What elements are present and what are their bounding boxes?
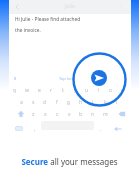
button[interactable]: c bbox=[51, 108, 63, 120]
button[interactable]: m bbox=[99, 108, 111, 120]
staticText: r bbox=[50, 87, 53, 94]
staticText: Hi Julie - Please find attached bbox=[15, 16, 81, 23]
button[interactable]: Send bbox=[91, 70, 107, 86]
button[interactable]: g bbox=[63, 96, 75, 108]
button[interactable]: y bbox=[69, 84, 81, 96]
button[interactable]: l bbox=[111, 96, 123, 108]
button[interactable]: q bbox=[9, 84, 21, 96]
button[interactable]: r bbox=[45, 84, 57, 96]
staticText: b bbox=[79, 111, 83, 118]
staticText: q bbox=[13, 87, 17, 94]
staticText: , bbox=[34, 126, 36, 133]
button[interactable]: a bbox=[15, 96, 27, 108]
staticText: u bbox=[85, 87, 89, 94]
staticText: l bbox=[116, 99, 118, 106]
staticText: d bbox=[43, 99, 47, 106]
button[interactable]: d bbox=[39, 96, 51, 108]
staticText: p bbox=[121, 87, 125, 94]
staticText: g bbox=[67, 99, 71, 106]
button[interactable]: Shift bbox=[12, 108, 30, 120]
staticText: w bbox=[25, 87, 29, 94]
staticText: h bbox=[79, 99, 83, 106]
staticText: Julie bbox=[65, 3, 75, 10]
button[interactable]: z bbox=[27, 108, 39, 120]
staticText: c bbox=[56, 111, 59, 118]
button[interactable]: e bbox=[33, 84, 45, 96]
staticText: n bbox=[91, 111, 95, 118]
button[interactable]: n bbox=[87, 108, 99, 120]
button[interactable]: p bbox=[117, 84, 129, 96]
staticText: o bbox=[109, 87, 113, 94]
staticText: f bbox=[56, 99, 58, 106]
button[interactable]: i bbox=[93, 84, 105, 96]
button[interactable]: o bbox=[105, 84, 117, 96]
button[interactable]: b bbox=[75, 108, 87, 120]
staticText: k bbox=[104, 99, 107, 106]
staticText: t bbox=[62, 87, 64, 94]
button[interactable]: f bbox=[51, 96, 63, 108]
button[interactable]: t bbox=[57, 84, 69, 96]
staticText: y bbox=[74, 87, 77, 94]
button[interactable]: h bbox=[75, 96, 87, 108]
button[interactable]: Back bbox=[12, 2, 22, 12]
button[interactable]: j bbox=[87, 96, 99, 108]
button[interactable]: u bbox=[81, 84, 93, 96]
button[interactable]: Backspace bbox=[113, 108, 131, 120]
staticText: e bbox=[38, 87, 41, 94]
button[interactable]: s bbox=[27, 96, 39, 108]
staticText: z bbox=[32, 111, 35, 118]
button[interactable]: w bbox=[21, 84, 33, 96]
staticText: Tap here bbox=[59, 76, 76, 81]
staticText: m bbox=[103, 111, 108, 118]
staticText: a bbox=[20, 99, 23, 106]
staticText: v bbox=[68, 111, 71, 118]
button[interactable]: Symbols bbox=[15, 126, 23, 131]
staticText: j bbox=[92, 99, 94, 106]
staticText: x bbox=[44, 111, 47, 118]
staticText: . bbox=[100, 126, 102, 133]
button[interactable]: x bbox=[39, 108, 51, 120]
button[interactable]: v bbox=[63, 108, 75, 120]
staticText: i bbox=[98, 87, 100, 94]
button[interactable]: Enter bbox=[109, 123, 127, 135]
staticText: s bbox=[32, 99, 35, 106]
staticText: the invoice. bbox=[15, 27, 41, 34]
staticText: Secure all your messages bbox=[0, 156, 139, 167]
button[interactable]: k bbox=[99, 96, 111, 108]
